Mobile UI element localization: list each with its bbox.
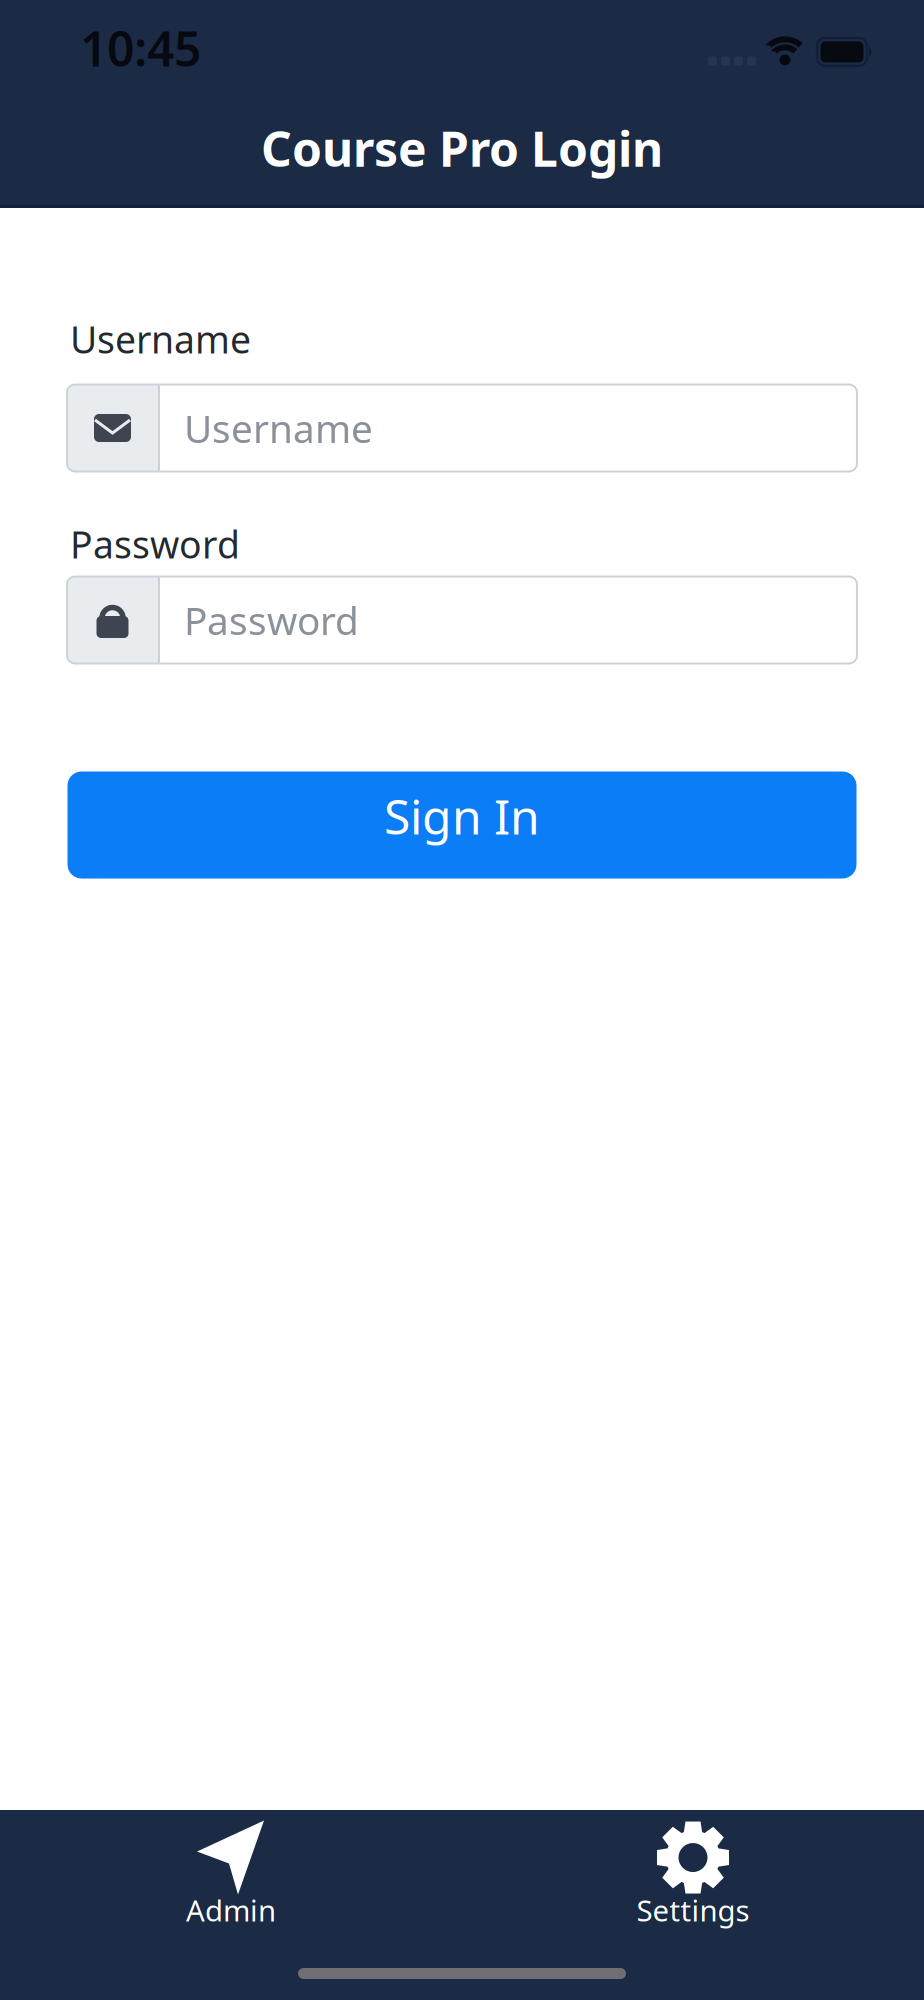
staticText: Username — [184, 402, 373, 454]
staticText: Admin — [186, 1890, 276, 1929]
staticText: Password — [184, 594, 359, 646]
staticText: Username — [70, 314, 251, 364]
button[interactable]: Username — [67, 384, 857, 471]
staticText: Settings — [636, 1890, 749, 1929]
staticText: Course Pro Login — [261, 116, 663, 180]
staticText: Sign In — [384, 784, 540, 848]
staticText: 10:45 — [80, 16, 201, 80]
button[interactable]: Admin — [186, 1820, 276, 1929]
button[interactable]: Settings — [636, 1820, 749, 1929]
button[interactable]: Password — [67, 576, 857, 663]
staticText: Password — [70, 519, 240, 569]
button[interactable]: Sign In — [67, 771, 856, 878]
